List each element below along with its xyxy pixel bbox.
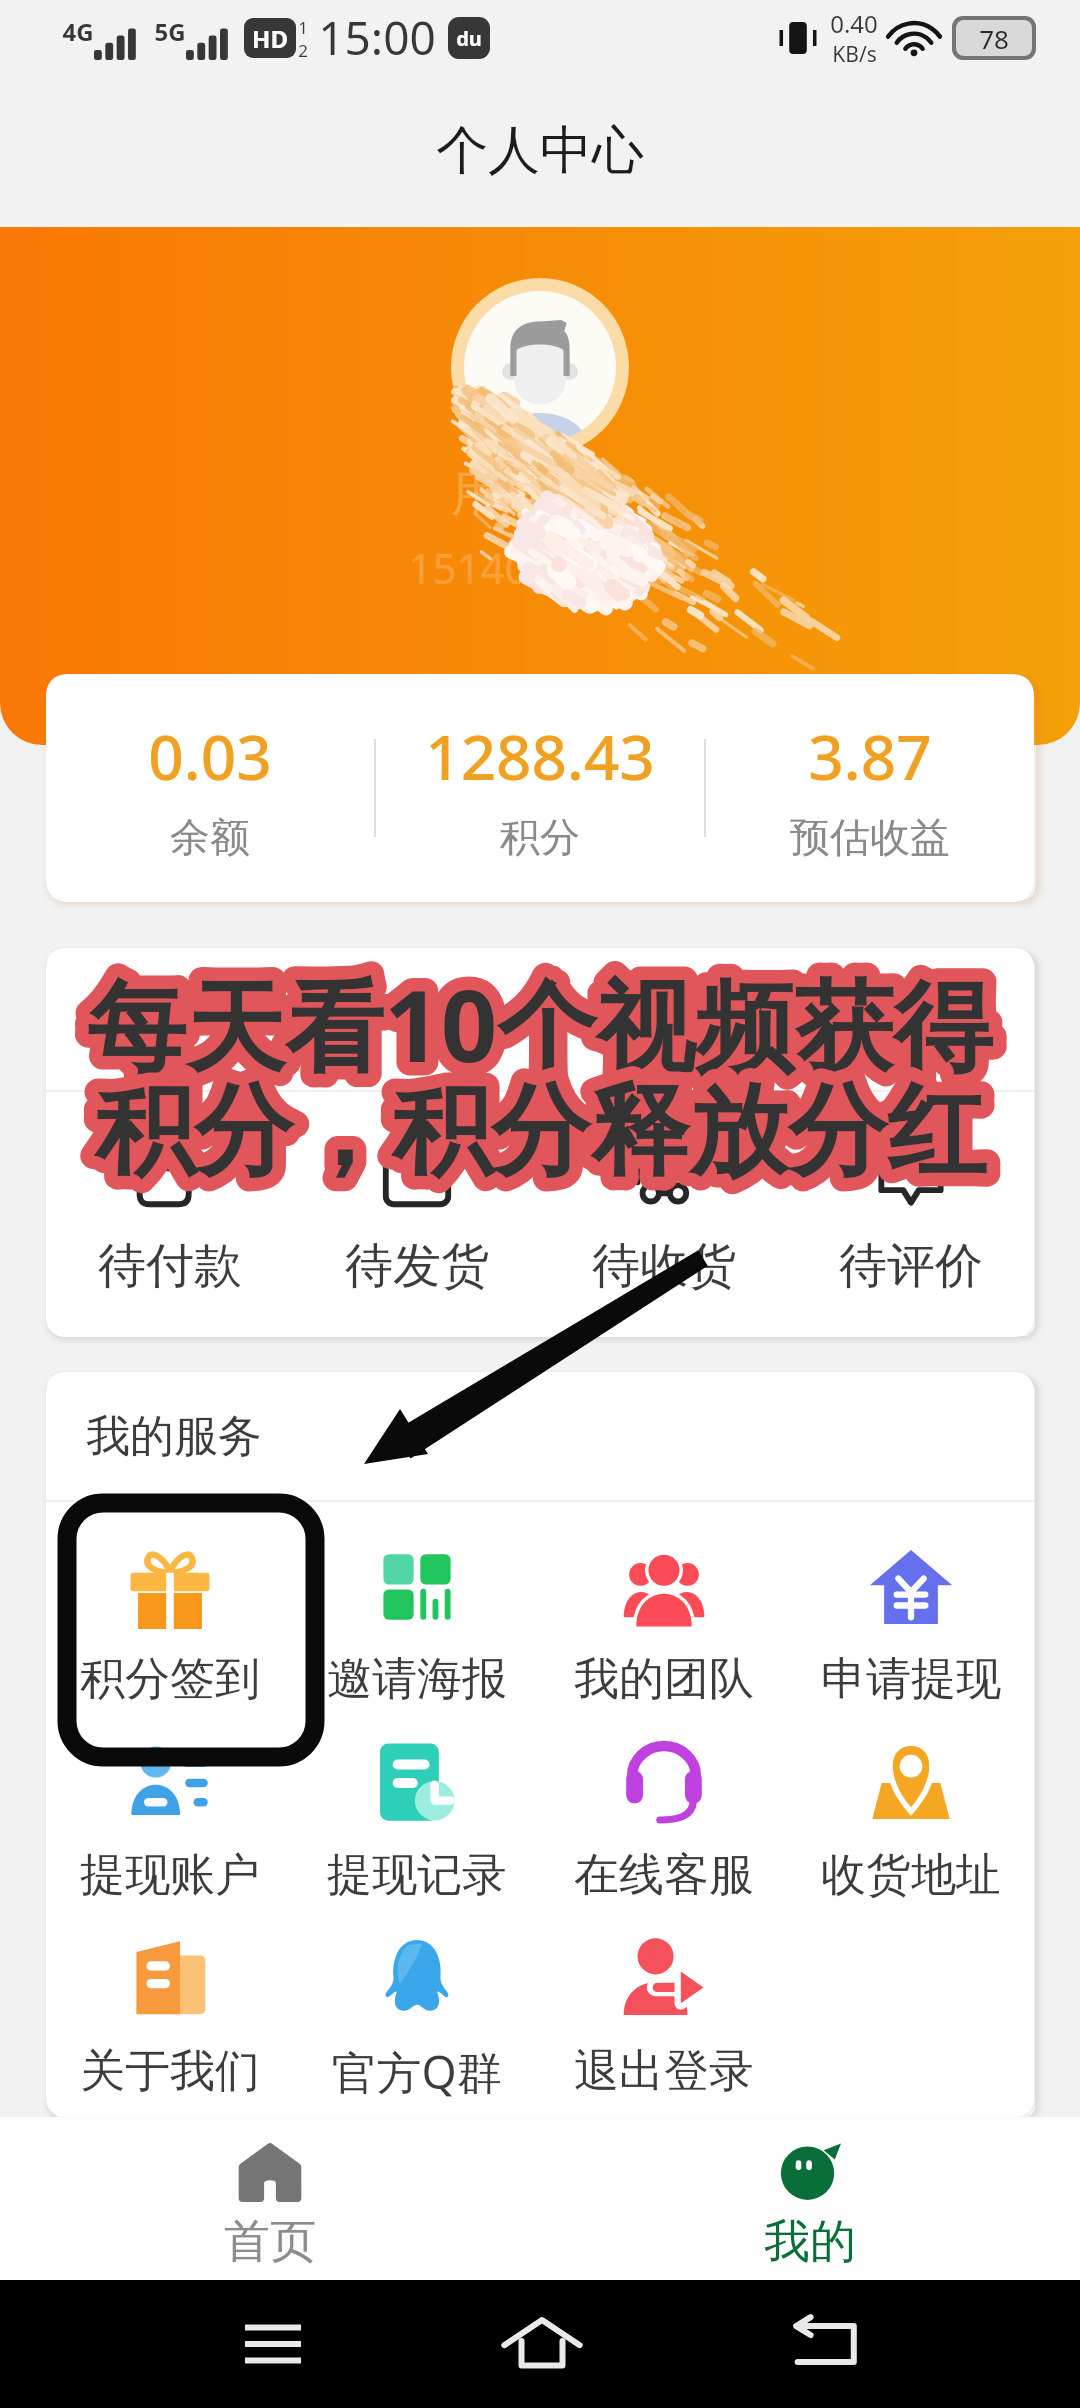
button[interactable]: 申请提现 bbox=[787, 1528, 1034, 1724]
staticText: 2 bbox=[298, 39, 308, 60]
staticText: 退出登录 bbox=[574, 2043, 754, 2100]
staticText: 个人中心 bbox=[436, 118, 644, 184]
staticText: 官方Q群 bbox=[331, 2041, 502, 2102]
button[interactable]: Profile avatar bbox=[451, 278, 629, 456]
staticText: 提现记录 bbox=[327, 1847, 507, 1904]
staticText: 每天看10个视频获得 bbox=[87, 956, 993, 1091]
button[interactable]: 退出登录 bbox=[540, 1920, 787, 2116]
staticText: 积分 bbox=[500, 812, 580, 862]
button[interactable]: 提现记录 bbox=[293, 1724, 540, 1920]
button[interactable]: 邀请海报 bbox=[293, 1528, 540, 1724]
staticText: 3.87 bbox=[808, 714, 932, 798]
staticText: 1288.43 bbox=[425, 714, 655, 798]
button[interactable]: 官方Q群 bbox=[293, 1920, 540, 2116]
staticText: 提现账户 bbox=[80, 1847, 260, 1904]
button[interactable]: 我的 bbox=[540, 2131, 1080, 2280]
button[interactable]: Recent apps bbox=[193, 2280, 353, 2408]
staticText: 用户888 bbox=[451, 459, 630, 525]
staticText: 收货地址 bbox=[821, 1847, 1001, 1904]
staticText: 0.40 bbox=[830, 7, 878, 40]
button[interactable]: 首页 bbox=[0, 2131, 540, 2280]
button[interactable]: 积分签到 bbox=[46, 1528, 293, 1724]
button[interactable]: 在线客服 bbox=[540, 1724, 787, 1920]
staticText: 待付款 bbox=[98, 1236, 242, 1296]
staticText: HD bbox=[252, 22, 288, 55]
button[interactable]: 收货地址 bbox=[787, 1724, 1034, 1920]
staticText: 积分，积分释放分红 bbox=[95, 1070, 986, 1195]
staticText: 我的 bbox=[764, 2213, 856, 2271]
staticText: 我的订单 bbox=[86, 994, 246, 1044]
staticText: 78 bbox=[979, 21, 1009, 56]
button[interactable]: 我的团队 bbox=[540, 1528, 787, 1724]
button[interactable]: Home bbox=[462, 2280, 622, 2408]
staticText: 积分签到 bbox=[80, 1651, 260, 1708]
staticText: KB/s bbox=[832, 40, 877, 69]
staticText: 邀请海报 bbox=[327, 1651, 507, 1708]
staticText: du bbox=[456, 25, 482, 52]
staticText: 余额 bbox=[170, 812, 250, 862]
staticText: 5G bbox=[154, 15, 186, 48]
button[interactable]: 关于我们 bbox=[46, 1920, 293, 2116]
button[interactable]: 待收货 bbox=[540, 1092, 787, 1337]
button[interactable]: 1288.43 bbox=[376, 674, 704, 902]
staticText: 预估收益 bbox=[790, 812, 950, 862]
button[interactable]: 0.03 bbox=[46, 674, 374, 902]
staticText: 积分，积分释放分红 bbox=[95, 1070, 986, 1195]
button[interactable]: 待发货 bbox=[293, 1092, 540, 1337]
button[interactable]: 3.87 bbox=[706, 674, 1034, 902]
staticText: 申请提现 bbox=[821, 1651, 1001, 1708]
staticText: 我的服务 bbox=[86, 1409, 262, 1464]
staticText: 首页 bbox=[224, 2213, 316, 2271]
staticText: 在线客服 bbox=[574, 1847, 754, 1904]
staticText: 1 bbox=[298, 16, 308, 39]
staticText: 每天看10个视频获得 bbox=[87, 956, 993, 1091]
staticText: 15:00 bbox=[318, 6, 436, 69]
button[interactable]: Back bbox=[745, 2280, 905, 2408]
button[interactable]: 待评价 bbox=[787, 1092, 1034, 1337]
staticText: 待收货 bbox=[592, 1236, 736, 1296]
staticText: 我的团队 bbox=[574, 1651, 754, 1708]
staticText: 15140000000 bbox=[408, 539, 673, 596]
staticText: 0.03 bbox=[148, 714, 272, 798]
staticText: 关于我们 bbox=[80, 2043, 260, 2100]
staticText: 待发货 bbox=[345, 1236, 489, 1296]
staticText: 4G bbox=[62, 15, 94, 48]
button[interactable]: 提现账户 bbox=[46, 1724, 293, 1920]
button[interactable]: 待付款 bbox=[46, 1092, 293, 1337]
staticText: 待评价 bbox=[839, 1236, 983, 1296]
